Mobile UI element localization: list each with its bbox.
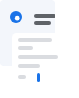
button[interactable]: Account (0, 0, 55, 66)
other: Account (10, 11, 22, 23)
button[interactable] (12, 33, 72, 87)
